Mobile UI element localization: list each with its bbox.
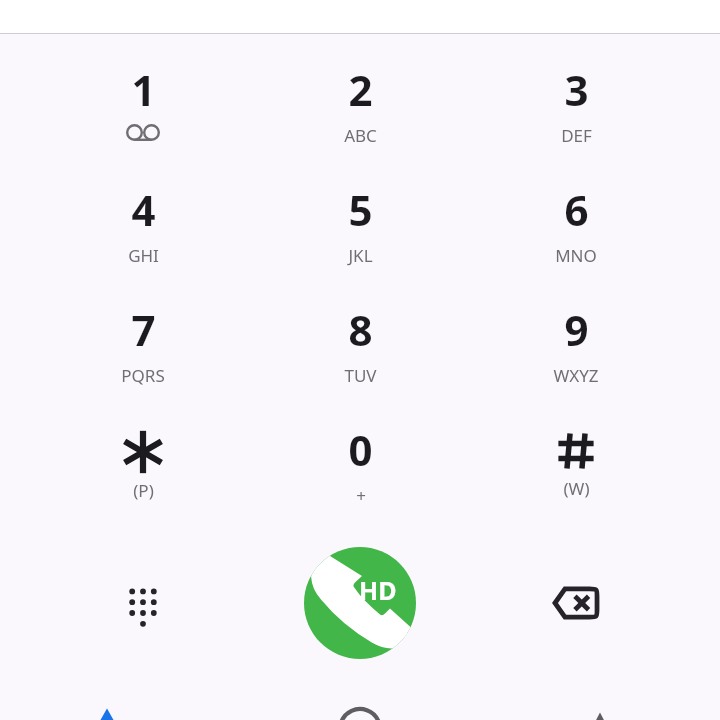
button[interactable]: Hide keypad [95, 555, 191, 651]
button[interactable]: 6 [504, 181, 648, 293]
staticText: ABC [344, 124, 377, 147]
staticText: 9 [564, 301, 589, 358]
staticText: 2 [348, 61, 373, 118]
button[interactable]: 4 [71, 181, 215, 293]
staticText: 0 [348, 421, 373, 478]
staticText: DEF [561, 124, 592, 147]
button[interactable]: 1 [71, 61, 215, 173]
staticText: (P) [133, 479, 154, 502]
staticText: + [356, 484, 366, 507]
button[interactable]: Star, pause [71, 421, 215, 533]
staticText: TUV [344, 364, 377, 387]
button[interactable]: 5 [288, 181, 432, 293]
staticText: (W) [563, 477, 590, 500]
button[interactable]: 9 [504, 301, 648, 413]
staticText: 7 [131, 301, 156, 358]
staticText: 6 [564, 181, 589, 238]
button[interactable]: 2 [288, 61, 432, 173]
button[interactable]: 8 [288, 301, 432, 413]
staticText: HD [359, 573, 397, 607]
button[interactable]: Favorites [35, 700, 179, 720]
staticText: 1 [131, 61, 156, 118]
staticText: 4 [131, 181, 156, 238]
button[interactable]: 3 [504, 61, 648, 173]
staticText: PQRS [121, 364, 165, 387]
staticText: JKL [348, 244, 373, 267]
button[interactable]: Pound, wait [504, 421, 648, 533]
staticText: GHI [128, 244, 159, 267]
button[interactable]: 0 [288, 421, 432, 533]
button[interactable]: 7 [71, 301, 215, 413]
button[interactable]: Recents [288, 700, 432, 720]
staticText: 8 [348, 301, 373, 358]
button[interactable]: Contacts [528, 700, 672, 720]
button[interactable]: Delete [528, 555, 624, 651]
staticText: 3 [564, 61, 589, 118]
staticText: 5 [348, 181, 373, 238]
button[interactable]: Call [304, 547, 416, 659]
staticText: WXYZ [553, 364, 599, 387]
staticText: MNO [555, 244, 597, 267]
